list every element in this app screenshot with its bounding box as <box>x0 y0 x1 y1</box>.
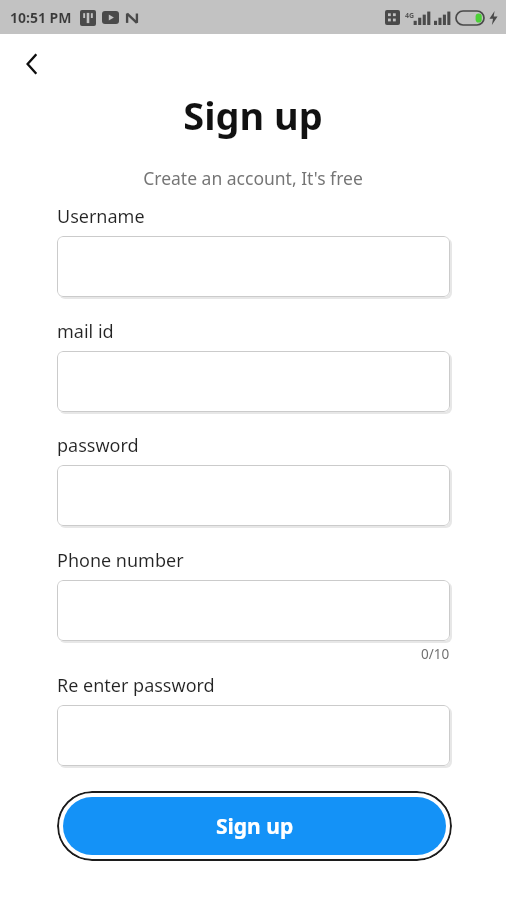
button[interactable]: Sign up <box>63 797 446 855</box>
staticText: 4G <box>405 11 415 21</box>
button[interactable] <box>57 236 450 297</box>
button[interactable] <box>57 580 450 641</box>
staticText: mail id <box>57 319 114 344</box>
button[interactable] <box>57 351 450 412</box>
staticText: password <box>57 433 139 458</box>
button[interactable] <box>57 705 450 766</box>
staticText: 0/10 <box>421 645 450 663</box>
button[interactable] <box>57 465 450 526</box>
staticText: Re enter password <box>57 673 215 698</box>
staticText: 10:51 PM <box>10 8 72 27</box>
staticText: Sign up <box>183 89 323 141</box>
button[interactable]: Back <box>12 44 52 84</box>
staticText: Phone number <box>57 548 184 573</box>
staticText: Create an account, It's free <box>143 166 363 190</box>
staticText: Username <box>57 204 145 229</box>
staticText: Sign up <box>216 812 294 841</box>
